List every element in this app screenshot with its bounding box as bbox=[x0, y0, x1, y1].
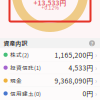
staticText: 4,533円 bbox=[68, 63, 93, 72]
staticText: 信用建玉(0) bbox=[10, 89, 41, 97]
staticText: › bbox=[95, 63, 97, 73]
staticText: 現金 bbox=[10, 76, 22, 85]
staticText: 9,368,090円 bbox=[54, 76, 93, 85]
button[interactable]: 株式(2) bbox=[0, 48, 100, 61]
staticText: › bbox=[95, 75, 97, 85]
staticText: ? bbox=[90, 39, 93, 47]
button[interactable]: 投資信託(1) bbox=[0, 61, 100, 74]
staticText: +13,533円 bbox=[33, 0, 66, 8]
staticText: 0円 bbox=[82, 89, 93, 98]
staticText: › bbox=[95, 50, 97, 60]
staticText: 1,165,200円 bbox=[54, 50, 93, 60]
staticText: 投資信託(1) bbox=[10, 64, 41, 72]
button[interactable]: 信用建玉(0) bbox=[0, 87, 100, 100]
staticText: +0.12% bbox=[41, 4, 58, 11]
button[interactable]: 資産内訳の説明 bbox=[87, 38, 97, 48]
staticText: 株式(2) bbox=[10, 51, 29, 59]
staticText: 資産内訳 bbox=[3, 39, 27, 47]
staticText: › bbox=[95, 88, 97, 98]
button[interactable]: 現金 bbox=[0, 74, 100, 87]
